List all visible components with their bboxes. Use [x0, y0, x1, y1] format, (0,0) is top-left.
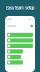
staticText: Easy team setup [6, 6, 34, 10]
